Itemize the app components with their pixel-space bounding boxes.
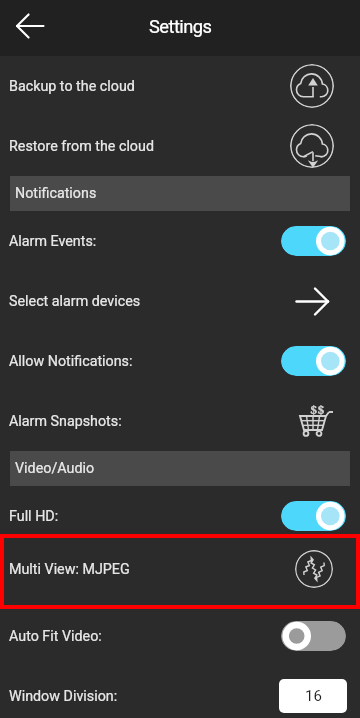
button[interactable]: 16 (279, 679, 347, 713)
button[interactable]: Back (6, 2, 54, 50)
staticText: Backup to the cloud (9, 78, 135, 95)
button[interactable]: Window Division: (0, 666, 360, 718)
button[interactable]: Auto Fit Video: (0, 606, 360, 666)
staticText: Settings (149, 16, 212, 37)
staticText: 16 (305, 687, 322, 705)
button[interactable]: Full HD: (0, 486, 360, 546)
button[interactable]: Alarm Events: (0, 211, 360, 271)
staticText: Restore from the cloud (9, 138, 154, 155)
button[interactable]: Alarm Snapshots: (0, 391, 360, 451)
staticText: Multi View: MJPEG (9, 561, 130, 578)
button[interactable]: Toggle on (281, 226, 346, 256)
button[interactable]: Restore from the cloud (0, 116, 360, 176)
button[interactable]: Toggle on (281, 501, 346, 531)
button[interactable]: Alarm Snapshots (296, 401, 336, 441)
staticText: Full HD: (9, 508, 59, 525)
button[interactable]: Multi View mode (295, 550, 333, 588)
staticText: Window Division: (9, 688, 118, 705)
staticText: Alarm Events: (9, 233, 97, 250)
staticText: Notifications (15, 185, 97, 202)
staticText: $$ (310, 401, 325, 419)
staticText: Video/Audio (15, 460, 95, 477)
button[interactable]: Toggle off (281, 621, 346, 651)
staticText: Alarm Snapshots: (9, 413, 122, 430)
staticText: Select alarm devices (9, 293, 141, 310)
button[interactable]: Select alarm devices (0, 271, 360, 331)
button[interactable]: Backup to the cloud (290, 64, 334, 108)
staticText: Allow Notifications: (9, 353, 133, 370)
button[interactable]: Multi View: MJPEG (0, 546, 360, 606)
staticText: Auto Fit Video: (9, 628, 102, 645)
button[interactable]: Select alarm devices (296, 287, 329, 316)
button[interactable]: Allow Notifications: (0, 331, 360, 391)
button[interactable]: Backup to the cloud (0, 56, 360, 116)
button[interactable]: Restore from the cloud (290, 124, 334, 168)
button[interactable]: Toggle on (281, 346, 346, 376)
